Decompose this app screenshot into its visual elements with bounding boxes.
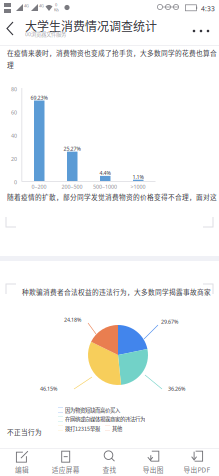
staticText: 4:33 [201, 4, 215, 13]
button[interactable]: 导出图 [131, 448, 175, 476]
staticText: 查找 [102, 465, 116, 474]
staticText: 在网络或向媒体揭露商家的违法行为 [65, 415, 145, 423]
staticText: 大学生消费情况调查统计 [25, 17, 157, 34]
staticText: 20 [11, 155, 17, 162]
button[interactable]: More [190, 18, 214, 44]
staticText: 60 [11, 109, 17, 116]
staticText: 适应屏幕 [52, 465, 80, 474]
staticText: 0~200 [31, 183, 46, 190]
staticText: 导出图 [143, 465, 164, 474]
button[interactable]: 查找 [88, 448, 131, 476]
staticText: 36.26% [168, 385, 185, 392]
staticText: 500~1000 [93, 183, 117, 190]
staticText: 0 [55, 2, 57, 7]
staticText: 40 [11, 132, 17, 139]
staticText: 1.1% [132, 173, 143, 180]
button[interactable]: 导出PDF [175, 448, 219, 476]
staticText: 在疫情来袭时，消费物资也变成了抢手货，大多数同学的花费也算合 [7, 48, 217, 58]
staticText: 69.23% [30, 94, 47, 101]
staticText: 46.15% [40, 385, 57, 392]
button[interactable]: Back [5, 19, 27, 43]
staticText: 4.4% [99, 169, 110, 177]
staticText: 25.27% [63, 145, 80, 152]
staticText: 导出PDF [184, 465, 211, 474]
staticText: 80 [11, 85, 17, 93]
staticText: 其他 [112, 424, 122, 432]
button[interactable]: 适应屏幕 [44, 448, 88, 476]
staticText: 4G [24, 3, 29, 8]
staticText: 因为物资短缺而高价买入 [65, 406, 120, 414]
staticText: >1000 [130, 183, 145, 190]
staticText: 理 [7, 60, 14, 70]
staticText: 0 [14, 178, 17, 186]
staticText: 不正当行为 [7, 427, 42, 437]
staticText: 29.67% [161, 318, 178, 325]
staticText: 随着疫情的扩散，部分同学发觉消费物资的价格变得不合理，面对这 [7, 192, 217, 202]
staticText: 编辑 [15, 465, 29, 474]
staticText: 200~500 [61, 183, 82, 190]
staticText: 24.18% [64, 316, 81, 323]
staticText: 拨打12315举报 [65, 424, 100, 432]
button[interactable]: 编辑 [0, 448, 44, 476]
staticText: K/s [54, 7, 59, 12]
staticText: 00浏览器文件服务 [25, 30, 66, 38]
staticText: 种欺骗消费者合法权益的违法行为，大多数同学揭露事故商家 [22, 287, 211, 297]
staticText: 4G [39, 3, 44, 8]
